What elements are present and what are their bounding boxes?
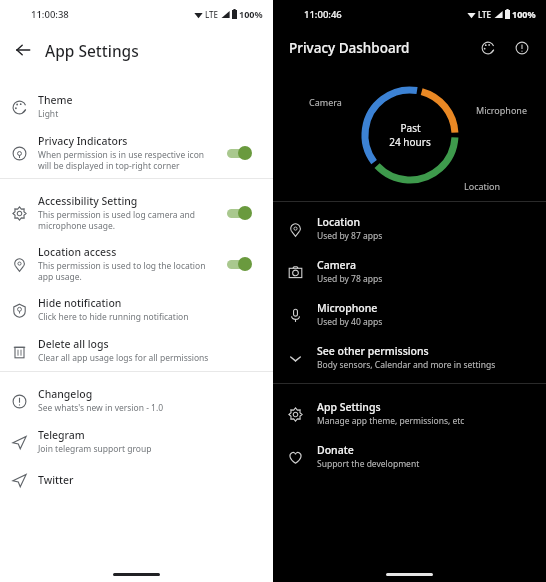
button[interactable]: Microphone bbox=[273, 293, 546, 336]
staticText: Used by 40 apps bbox=[317, 316, 383, 328]
staticText: Camera bbox=[309, 96, 342, 108]
staticText: Join telegram support group bbox=[38, 443, 152, 455]
staticText: This permission is used log camera and m… bbox=[38, 209, 219, 231]
staticText: Body sensors, Calendar and more in setti… bbox=[317, 359, 496, 371]
staticText: LTE bbox=[478, 9, 492, 20]
staticText: Location bbox=[464, 180, 501, 192]
staticText: Privacy Dashboard bbox=[289, 39, 474, 57]
staticText: Changelog bbox=[38, 387, 93, 401]
button[interactable]: App Settings bbox=[273, 392, 546, 435]
staticText: 11:00:38 bbox=[31, 8, 69, 21]
button[interactable]: Theme bbox=[474, 34, 502, 62]
staticText: Past bbox=[400, 121, 421, 135]
button[interactable] bbox=[225, 256, 255, 272]
staticText: Click here to hide running notification bbox=[38, 311, 189, 323]
staticText: When permission is in use respective ico… bbox=[38, 149, 219, 171]
button[interactable]: Hide notification bbox=[0, 289, 273, 330]
staticText: Hide notification bbox=[38, 296, 122, 310]
button[interactable]: Accessibility Setting bbox=[0, 187, 273, 238]
staticText: Microphone bbox=[476, 104, 527, 116]
staticText: Privacy Indicators bbox=[38, 134, 128, 148]
button[interactable] bbox=[225, 205, 255, 221]
staticText: 100% bbox=[512, 8, 536, 20]
button[interactable]: Theme bbox=[0, 86, 273, 127]
button[interactable]: Twitter bbox=[0, 462, 273, 498]
button[interactable]: Camera bbox=[273, 250, 546, 293]
button[interactable]: Privacy Indicators bbox=[0, 127, 273, 178]
button[interactable]: Back bbox=[6, 33, 40, 67]
staticText: See whats's new in version - 1.0 bbox=[38, 402, 164, 414]
button[interactable] bbox=[225, 145, 255, 161]
button[interactable]: Delete all logs bbox=[0, 330, 273, 371]
staticText: Accessibility Setting bbox=[38, 194, 138, 208]
button[interactable]: Info bbox=[508, 34, 536, 62]
staticText: Telegram bbox=[38, 428, 85, 442]
staticText: Donate bbox=[317, 443, 354, 457]
staticText: Twitter bbox=[38, 473, 74, 487]
staticText: Light bbox=[38, 108, 59, 120]
staticText: App Settings bbox=[45, 40, 139, 61]
staticText: See other permissions bbox=[317, 344, 429, 358]
staticText: Camera bbox=[317, 258, 356, 272]
staticText: This permission is used to log the locat… bbox=[38, 260, 219, 282]
button[interactable]: See other permissions bbox=[273, 336, 546, 379]
staticText: LTE bbox=[205, 9, 219, 20]
staticText: Used by 78 apps bbox=[317, 273, 383, 285]
staticText: App Settings bbox=[317, 400, 381, 414]
staticText: Manage app theme, permissions, etc bbox=[317, 415, 465, 427]
button[interactable]: Location access bbox=[0, 238, 273, 289]
staticText: Used by 87 apps bbox=[317, 230, 383, 242]
staticText: 11:00:46 bbox=[304, 8, 342, 21]
staticText: Support the development bbox=[317, 458, 420, 470]
button[interactable]: Telegram bbox=[0, 421, 273, 462]
staticText: 24 hours bbox=[389, 135, 431, 149]
staticText: Theme bbox=[38, 93, 73, 107]
staticText: Location access bbox=[38, 245, 117, 259]
button[interactable]: Changelog bbox=[0, 380, 273, 421]
staticText: Clear all app usage logs for all permiss… bbox=[38, 352, 209, 364]
staticText: 100% bbox=[239, 8, 263, 20]
staticText: Delete all logs bbox=[38, 337, 109, 351]
button[interactable]: Location bbox=[273, 207, 546, 250]
staticText: Microphone bbox=[317, 301, 378, 315]
staticText: Location bbox=[317, 215, 361, 229]
button[interactable]: Donate bbox=[273, 435, 546, 478]
